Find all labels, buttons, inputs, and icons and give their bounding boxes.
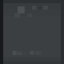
- button[interactable]: [0, 0, 64, 64]
